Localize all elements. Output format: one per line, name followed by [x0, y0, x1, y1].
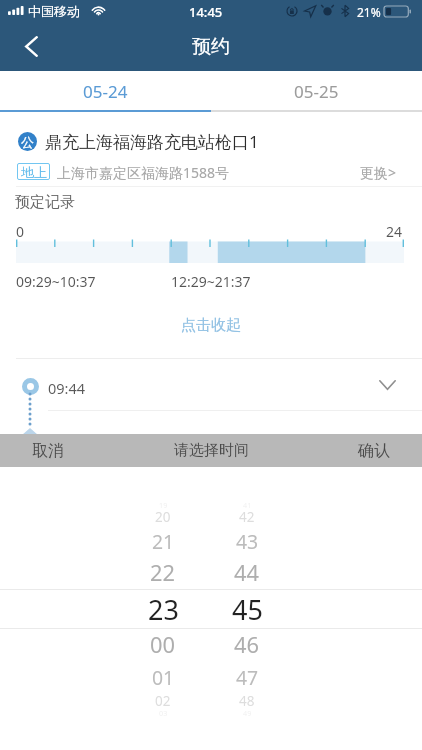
staticText: 09:44: [48, 378, 86, 398]
staticText: 14:45: [189, 3, 223, 21]
staticText: 47: [236, 664, 259, 690]
button[interactable]: 确认: [334, 434, 422, 467]
staticText: 预约: [192, 35, 230, 59]
staticText: 24: [386, 222, 403, 241]
staticText: 48: [239, 692, 255, 710]
button[interactable]: Expand: [368, 368, 406, 402]
staticText: 41: [243, 500, 252, 510]
button[interactable]: 取消: [0, 434, 88, 467]
staticText: 19: [159, 500, 168, 510]
staticText: 49: [243, 708, 252, 718]
staticText: 中国移动: [28, 3, 80, 19]
button[interactable]: [0, 360, 422, 410]
staticText: 上海市嘉定区福海路1588号: [57, 163, 230, 180]
staticText: 22: [150, 558, 176, 588]
button[interactable]: [0, 122, 422, 158]
staticText: 12:29~21:37: [171, 272, 251, 291]
staticText: 21%: [357, 4, 381, 20]
staticText: 03: [159, 708, 168, 718]
staticText: 鼎充上海福海路充电站枪口1: [45, 130, 259, 153]
staticText: 请选择时间: [174, 441, 249, 460]
staticText: 预定记录: [15, 193, 75, 212]
button[interactable]: Back: [8, 22, 54, 71]
staticText: 05-24: [83, 80, 128, 103]
button[interactable]: 05-25: [211, 71, 422, 112]
staticText: 地上: [21, 164, 47, 180]
staticText: 更换>: [360, 163, 397, 180]
staticText: 点击收起: [181, 316, 241, 335]
staticText: 取消: [32, 441, 64, 461]
staticText: 0: [16, 222, 25, 241]
staticText: 01: [152, 664, 175, 690]
staticText: 44: [234, 558, 260, 588]
staticText: 02: [155, 692, 171, 710]
staticText: 05-25: [294, 80, 339, 103]
staticText: 20: [155, 508, 171, 526]
staticText: 21: [152, 528, 175, 554]
staticText: 00: [150, 630, 176, 660]
button[interactable]: 05-24: [0, 71, 211, 112]
staticText: 公: [21, 134, 34, 150]
button[interactable]: 更换>: [360, 163, 397, 180]
staticText: 23: [148, 591, 179, 627]
staticText: 46: [234, 630, 260, 660]
staticText: 确认: [358, 441, 390, 461]
staticText: 09:29~10:37: [16, 272, 96, 291]
staticText: 45: [232, 591, 263, 627]
button[interactable]: 点击收起: [0, 305, 422, 345]
staticText: 42: [239, 508, 255, 526]
staticText: 43: [236, 528, 259, 554]
